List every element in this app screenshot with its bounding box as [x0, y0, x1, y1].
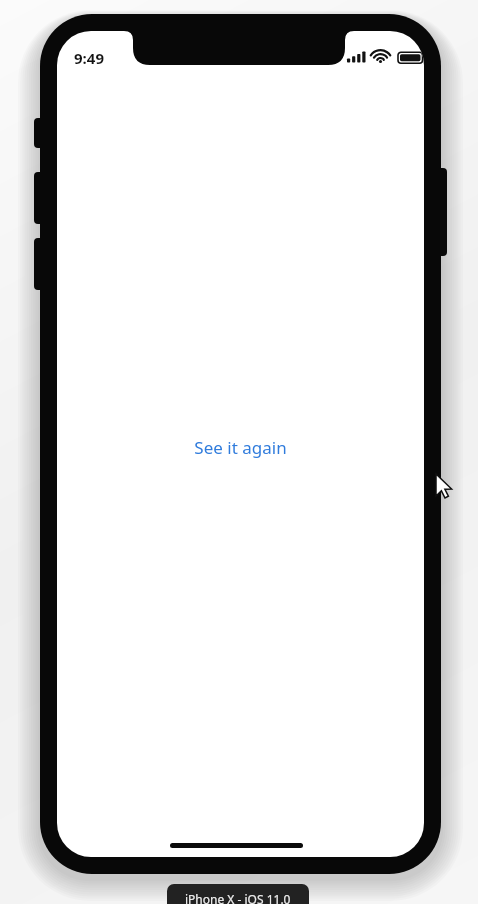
- button[interactable]: See it again: [177, 431, 304, 463]
- staticText: iPhone X - iOS 11.0: [185, 891, 291, 904]
- other: Home indicator: [170, 843, 303, 848]
- staticText: 9:49: [74, 48, 104, 68]
- staticText: See it again: [194, 436, 287, 459]
